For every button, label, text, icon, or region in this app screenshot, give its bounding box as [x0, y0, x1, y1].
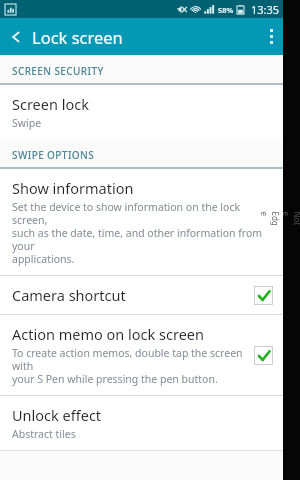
staticText: Screen lock — [12, 94, 89, 114]
staticText: Abstract tiles — [12, 427, 76, 441]
staticText: Camera shortcut — [12, 285, 126, 305]
staticText: Galaxy Note Edge — [258, 211, 300, 228]
button[interactable]: Show information — [0, 169, 283, 275]
staticText: Lock screen — [32, 26, 123, 48]
staticText: 13:35 — [251, 2, 280, 17]
button[interactable]: Action memo on lock screen — [0, 315, 283, 395]
staticText: SWIPE OPTIONS — [12, 148, 95, 162]
staticText: Swipe — [12, 116, 42, 130]
button[interactable]: Camera shortcut — [0, 276, 283, 314]
staticText: Unlock effect — [12, 405, 102, 425]
staticText: 58% — [218, 5, 234, 15]
staticText: Set the device to show information on th… — [12, 200, 273, 266]
button[interactable]: Back — [0, 18, 27, 55]
staticText: To create action memos, double tap the s… — [12, 346, 246, 386]
staticText: Action memo on lock screen — [12, 324, 204, 344]
button[interactable]: Unlock effect — [0, 396, 283, 450]
staticText: SCREEN SECURITY — [12, 64, 104, 78]
button[interactable]: More options — [260, 18, 283, 55]
staticText: Show information — [12, 178, 134, 198]
button[interactable]: Screen lock — [0, 85, 283, 139]
